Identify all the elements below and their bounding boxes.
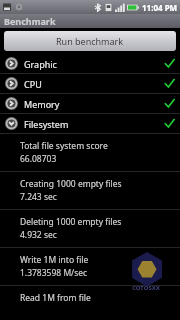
staticText: COTOSXX: [132, 284, 160, 292]
other: Expand Graphic: [5, 57, 18, 70]
other: Expand Memory: [5, 97, 18, 110]
button[interactable]: Write 1M into file: [0, 248, 180, 285]
staticText: 1.3783598 M/sec: [20, 267, 88, 279]
staticText: CPU: [24, 78, 42, 90]
staticText: Run benchmark: [56, 35, 124, 47]
staticText: Benchmark: [4, 15, 56, 27]
staticText: Total file system score: [20, 140, 108, 152]
button[interactable]: Read 1M from file: [0, 286, 180, 310]
other: Collapse Filesystem: [5, 117, 18, 130]
button[interactable]: Expand CPU: [0, 74, 180, 93]
staticText: Write 1M into file: [20, 254, 89, 266]
staticText: 4.932 sec: [20, 229, 57, 241]
staticText: 7.243 sec: [20, 191, 57, 203]
staticText: 66.08703: [20, 153, 57, 165]
staticText: Read 1M from file: [20, 292, 91, 304]
staticText: 11:04 PM: [142, 2, 178, 13]
staticText: Graphic: [24, 58, 57, 70]
button[interactable]: Total file system score: [0, 134, 180, 171]
staticText: Filesystem: [24, 118, 69, 130]
button[interactable]: Collapse Filesystem: [0, 114, 180, 133]
button[interactable]: Expand Graphic: [0, 54, 180, 73]
staticText: Memory: [24, 98, 60, 110]
button[interactable]: Run benchmark: [4, 31, 176, 51]
other: Expand CPU: [5, 77, 18, 90]
button[interactable]: Creating 1000 empty files: [0, 172, 180, 209]
button[interactable]: Expand Memory: [0, 94, 180, 113]
button[interactable]: Deleting 1000 empty files: [0, 210, 180, 247]
staticText: Deleting 1000 empty files: [20, 216, 122, 228]
staticText: Creating 1000 empty files: [20, 178, 122, 190]
